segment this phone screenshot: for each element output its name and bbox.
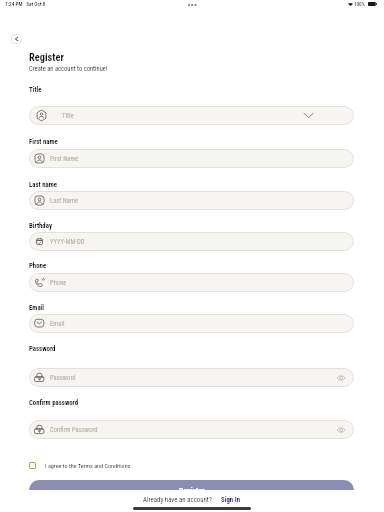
staticText: Birthday: [29, 222, 52, 230]
staticText: Password: [50, 374, 76, 382]
button[interactable]: Password: [29, 368, 354, 387]
staticText: Email: [29, 304, 45, 312]
staticText: Already have an account?: [143, 496, 212, 504]
button[interactable]: I agree to the Terms and Conditions: [29, 458, 139, 472]
staticText: 100%: [354, 1, 365, 7]
staticText: Last name: [29, 181, 58, 189]
staticText: Title: [62, 112, 74, 120]
staticText: Confirm Password: [50, 426, 98, 434]
staticText: Register: [29, 51, 64, 63]
button[interactable]: Phone: [29, 273, 354, 292]
staticText: Email: [50, 320, 65, 328]
staticText: Last Name: [50, 197, 79, 205]
staticText: YYYY-MM-DD: [50, 238, 85, 246]
button[interactable]: Confirm Password: [29, 420, 354, 439]
staticText: Register: [179, 486, 205, 495]
staticText: First Name: [50, 155, 79, 163]
staticText: I agree to the Terms and Conditions: [45, 462, 131, 469]
button[interactable]: Back: [11, 34, 22, 44]
button[interactable]: Sign In: [221, 496, 241, 504]
staticText: Title: [29, 86, 42, 94]
button[interactable]: Title: [29, 106, 354, 125]
staticText: 7:24 PM Sat Oct 8: [5, 1, 46, 7]
staticText: Password: [29, 345, 56, 353]
button[interactable]: First Name: [29, 149, 354, 168]
button[interactable]: Email: [29, 314, 354, 333]
staticText: Phone: [50, 279, 67, 287]
staticText: Confirm password: [29, 399, 79, 407]
button[interactable]: Register: [29, 480, 354, 500]
staticText: First name: [29, 138, 58, 146]
staticText: Create an account to continue!: [29, 65, 108, 73]
button[interactable]: YYYY-MM-DD: [29, 232, 354, 251]
staticText: Phone: [29, 262, 47, 270]
button[interactable]: Last Name: [29, 191, 354, 210]
